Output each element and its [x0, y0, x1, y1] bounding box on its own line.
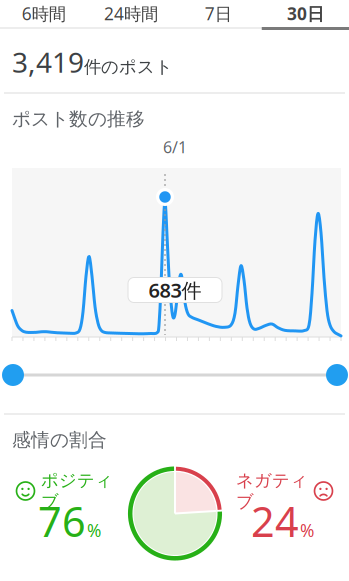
staticText: 7日: [205, 2, 232, 25]
staticText: 3,419: [12, 43, 84, 81]
button[interactable]: 24時間: [87, 0, 174, 30]
staticText: %: [87, 519, 101, 542]
staticText: ポジティブ: [41, 470, 113, 512]
staticText: 感情の割合: [12, 428, 107, 451]
button[interactable]: 30日: [262, 0, 349, 30]
staticText: 683件: [148, 277, 201, 303]
staticText: ポスト数の推移: [12, 107, 145, 130]
button[interactable]: 7日: [174, 0, 262, 30]
button[interactable]: 6時間: [0, 0, 87, 30]
staticText: 30日: [287, 2, 324, 25]
staticText: 6/1: [163, 136, 187, 158]
staticText: ネガティブ: [236, 470, 308, 512]
staticText: %: [300, 519, 314, 542]
staticText: 6時間: [22, 2, 66, 25]
staticText: 24: [251, 494, 299, 548]
staticText: 76: [38, 494, 86, 548]
staticText: 24時間: [104, 2, 158, 25]
staticText: 件のポスト: [84, 56, 173, 78]
